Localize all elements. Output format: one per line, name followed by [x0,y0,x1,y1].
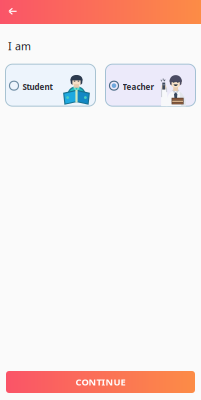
staticText: Teacher [122,82,154,92]
staticText: I am [8,39,31,53]
button[interactable]: Student [5,64,95,106]
button[interactable]: Teacher [105,64,195,106]
button[interactable]: CONTINUE [6,371,195,393]
button[interactable]: Back [0,0,26,24]
staticText: Student [22,82,52,92]
staticText: CONTINUE [75,376,125,388]
